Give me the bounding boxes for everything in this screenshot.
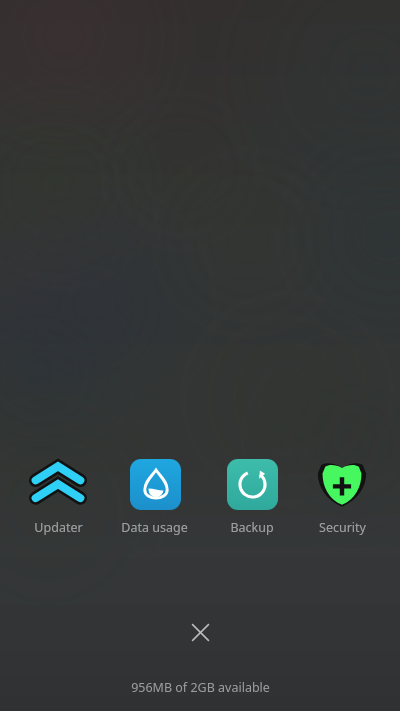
staticText: Data usage <box>121 519 188 536</box>
staticText: Backup <box>230 519 274 536</box>
button[interactable]: Security <box>309 455 375 538</box>
staticText: Security <box>319 519 366 536</box>
staticText: 956MB of 2GB available <box>131 679 270 696</box>
button[interactable]: Updater <box>25 455 91 538</box>
button[interactable]: Data usage <box>115 455 194 538</box>
button[interactable]: Close <box>181 613 219 651</box>
button[interactable]: Backup <box>219 455 285 538</box>
staticText: Updater <box>34 519 83 536</box>
